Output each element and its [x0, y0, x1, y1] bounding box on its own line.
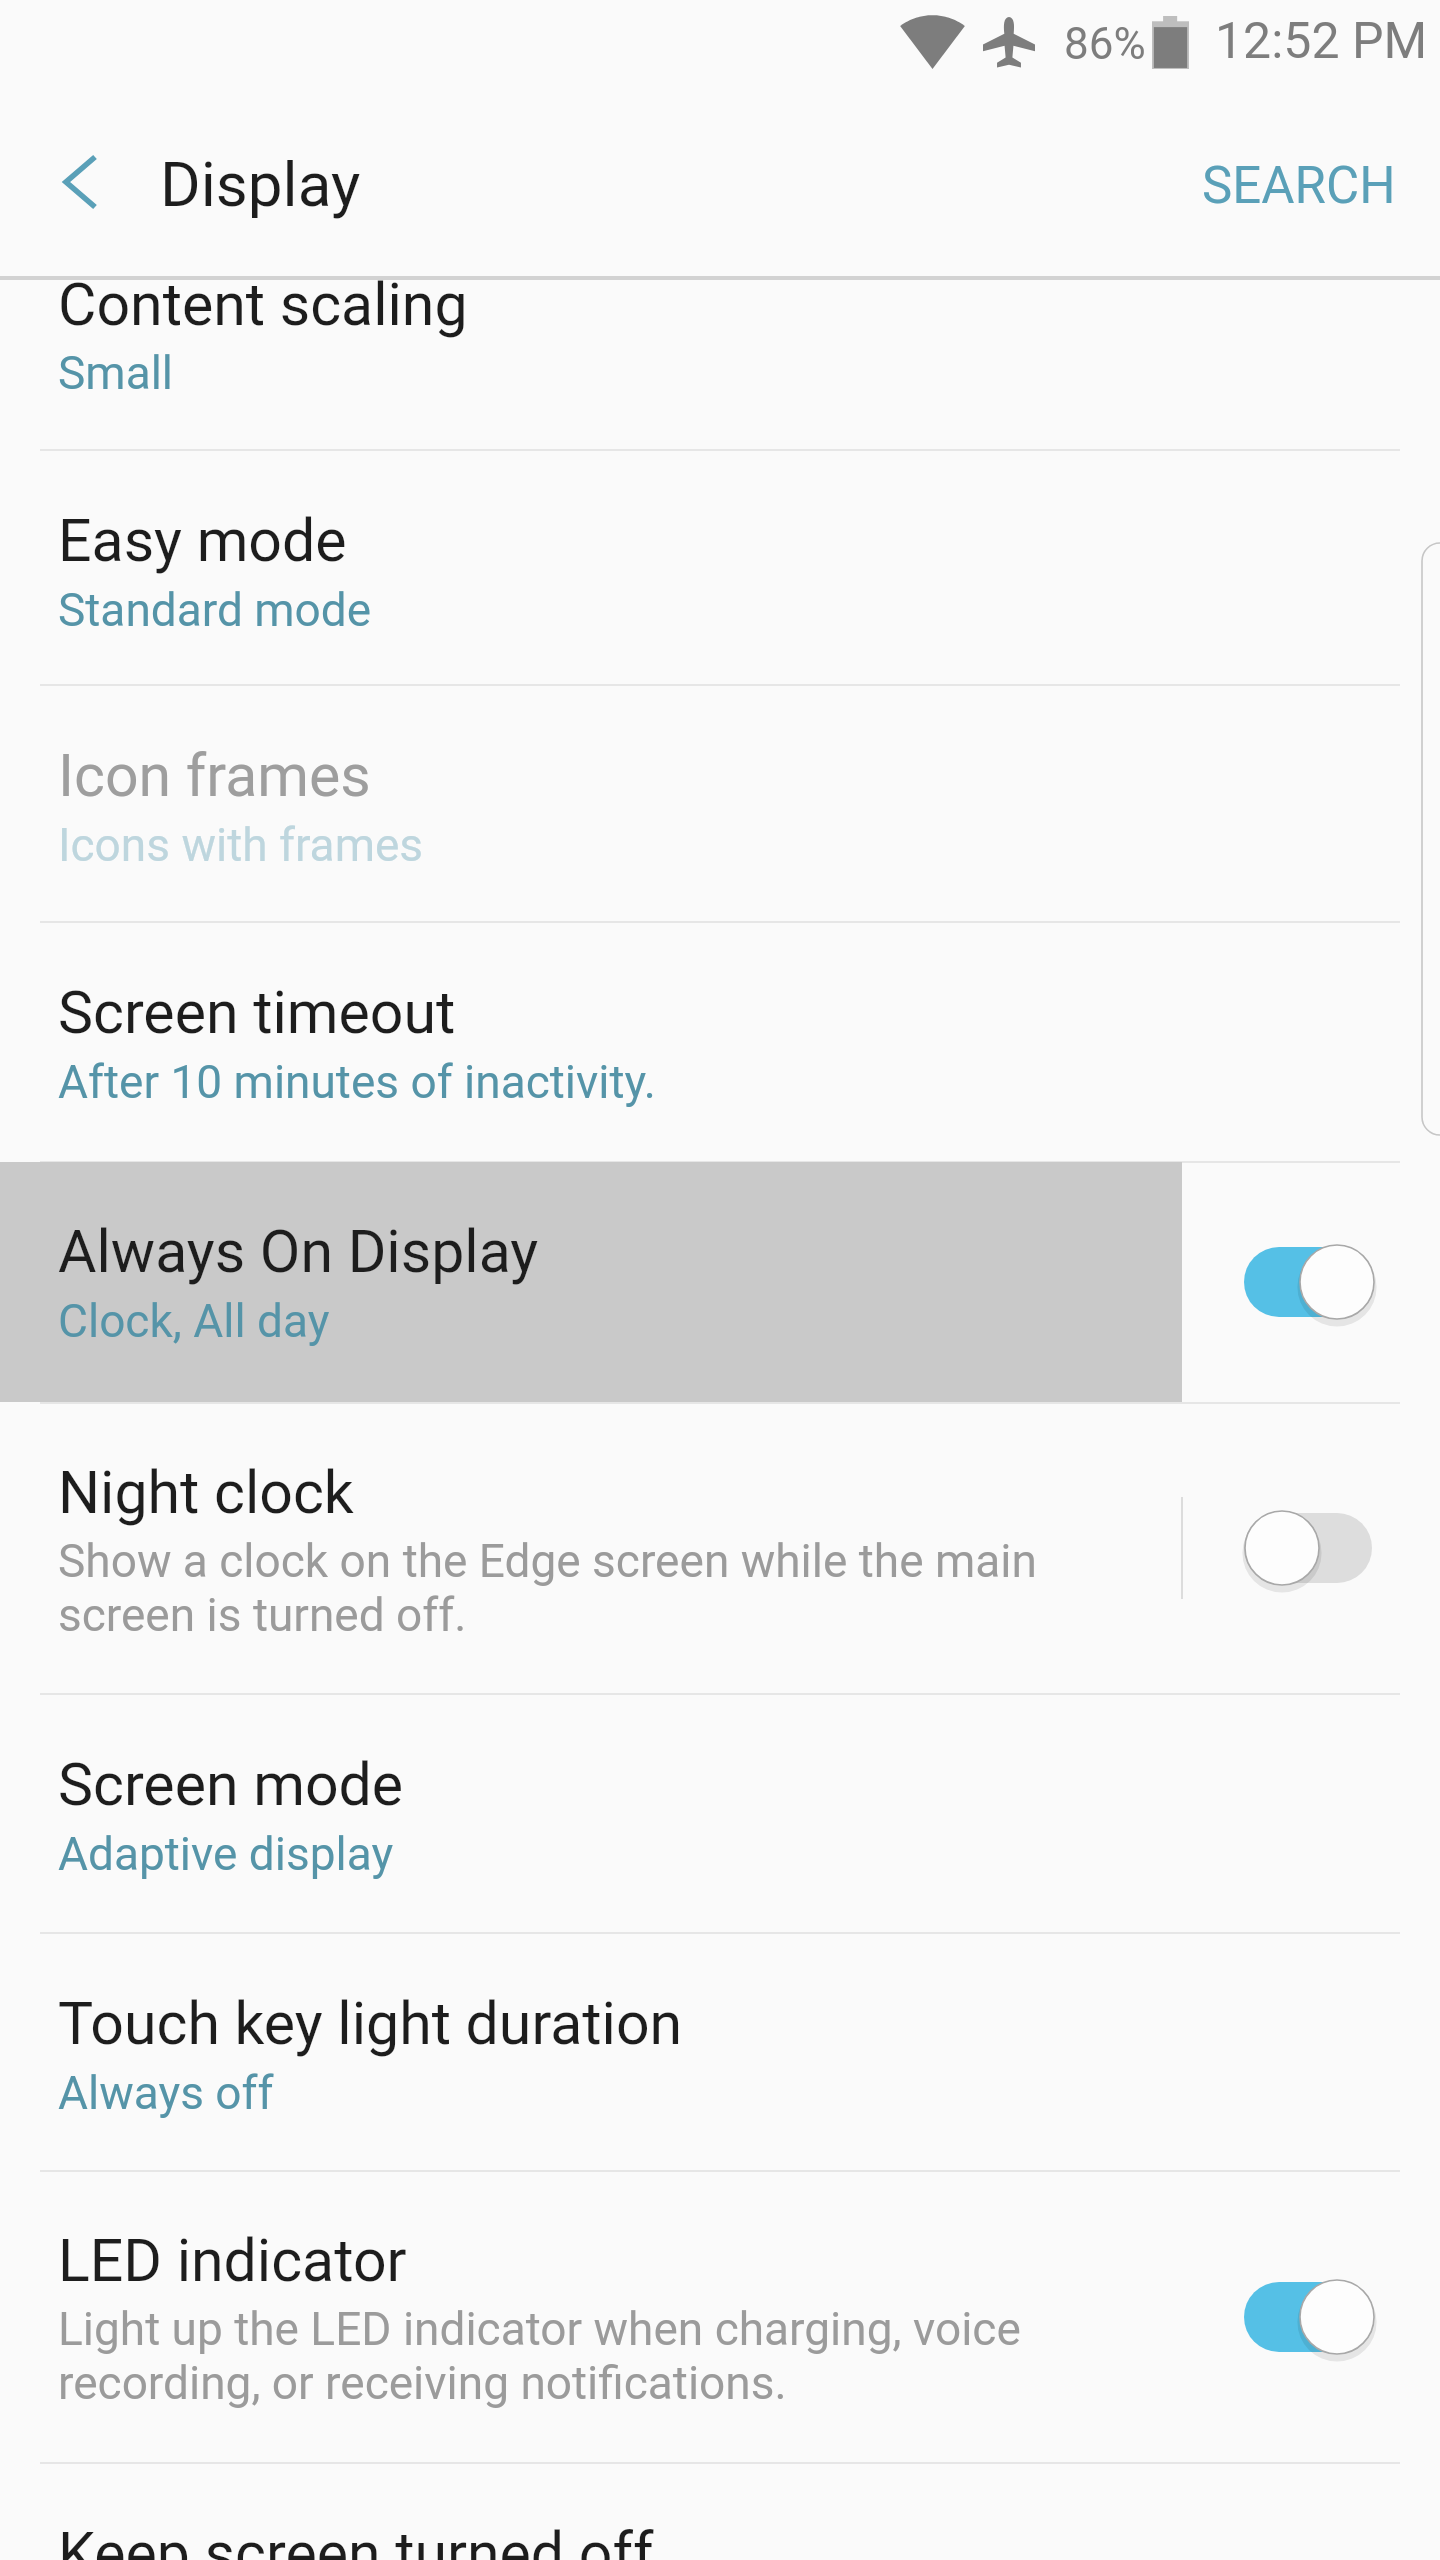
staticText: Light up the LED indicator when charging…: [58, 2302, 1021, 2356]
staticText: Night clock: [58, 1458, 354, 1527]
staticText: Standard mode: [58, 583, 372, 637]
button[interactable]: Switch off: [1208, 1468, 1408, 1628]
staticText: Touch key light duration: [58, 1989, 683, 2058]
staticText: recording, or receiving notifications.: [58, 2356, 787, 2410]
staticText: Easy mode: [58, 506, 347, 575]
staticText: Keep screen turned off: [58, 2519, 654, 2560]
staticText: LED indicator: [58, 2226, 407, 2295]
staticText: Icons with frames: [58, 818, 424, 872]
staticText: 12:52 PM: [1215, 12, 1428, 71]
staticText: SEARCH: [1202, 156, 1396, 216]
staticText: Show a clock on the Edge screen while th…: [58, 1534, 1037, 1588]
staticText: Small: [58, 346, 174, 400]
staticText: 86%: [1064, 18, 1146, 70]
staticText: Screen timeout: [58, 978, 456, 1047]
button[interactable]: Always On Display: [0, 1162, 1440, 1402]
button[interactable]: Keep screen turned off: [0, 2464, 1440, 2560]
button[interactable]: Switch on: [1208, 2237, 1408, 2397]
button[interactable]: Content scaling: [0, 280, 1440, 450]
button[interactable]: Screen mode: [0, 1695, 1440, 1933]
button[interactable]: Switch on: [1208, 1202, 1408, 1362]
button[interactable]: Touch key light duration: [0, 1934, 1440, 2171]
staticText: Icon frames: [58, 741, 371, 810]
staticText: After 10 minutes of inactivity.: [58, 1055, 656, 1109]
button[interactable]: LED indicator: [0, 2172, 1440, 2463]
staticText: Always off: [58, 2066, 274, 2120]
button[interactable]: Navigate up: [22, 127, 132, 237]
staticText: screen is turned off.: [58, 1588, 467, 1642]
button[interactable]: Night clock: [0, 1404, 1440, 1693]
button[interactable]: Screen timeout: [0, 923, 1440, 1162]
staticText: Display: [160, 148, 361, 221]
staticText: Clock, All day: [58, 1294, 330, 1348]
button[interactable]: Easy mode: [0, 451, 1440, 685]
staticText: Adaptive display: [58, 1827, 394, 1881]
button[interactable]: SEARCH: [1166, 130, 1432, 242]
staticText: Always On Display: [58, 1217, 539, 1286]
staticText: Screen mode: [58, 1750, 404, 1819]
button[interactable]: Icon frames: [0, 686, 1440, 922]
staticText: Content scaling: [58, 270, 468, 339]
